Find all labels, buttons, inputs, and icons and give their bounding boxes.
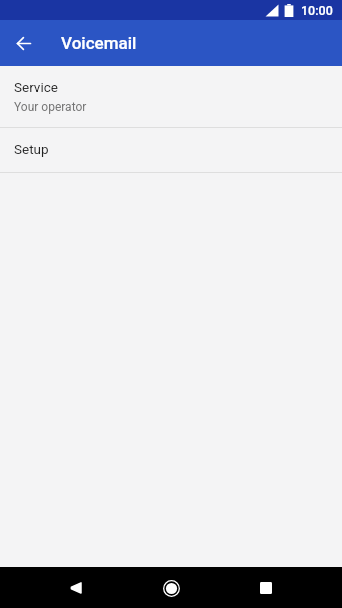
button[interactable]: Service bbox=[0, 66, 342, 127]
staticText: Voicemail bbox=[61, 33, 137, 53]
staticText: Service bbox=[14, 79, 58, 95]
button[interactable]: Setup bbox=[0, 128, 342, 172]
staticText: 10:00 bbox=[301, 3, 333, 18]
staticText: Setup bbox=[14, 141, 49, 157]
button[interactable]: Back bbox=[55, 568, 95, 608]
staticText: Your operator bbox=[14, 100, 87, 114]
button[interactable]: Back bbox=[7, 27, 40, 60]
button[interactable]: Recent apps bbox=[246, 568, 286, 608]
button[interactable]: Home bbox=[151, 568, 191, 608]
